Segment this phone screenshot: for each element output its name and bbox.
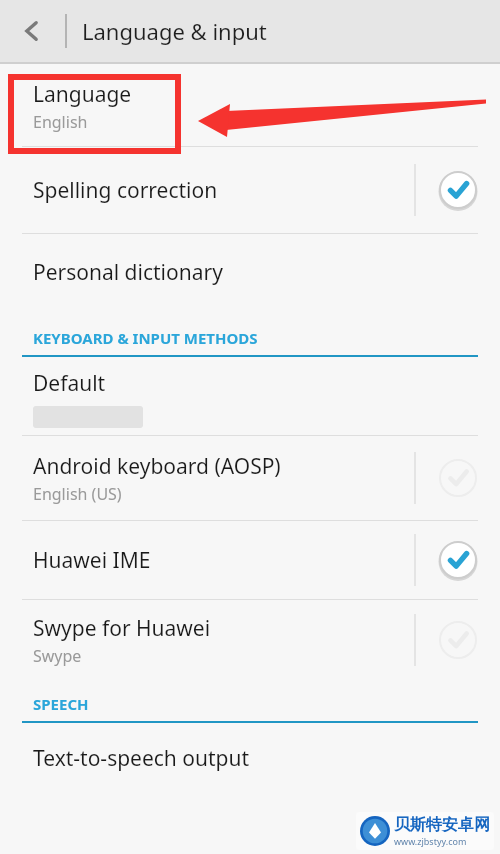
button[interactable]: Swype for Huawei — [0, 600, 500, 680]
staticText: English — [33, 111, 88, 133]
staticText: Swype — [33, 645, 82, 667]
button[interactable]: Language — [0, 64, 500, 146]
staticText: Text-to-speech output — [33, 744, 250, 773]
button[interactable]: Personal dictionary — [0, 234, 500, 312]
button[interactable]: Spelling correction — [0, 147, 500, 233]
staticText: Huawei IME — [33, 546, 151, 575]
staticText: www.zjbstyy.com — [394, 835, 467, 847]
staticText: Language & input — [82, 16, 267, 46]
staticText: Swype for Huawei — [33, 614, 211, 643]
button[interactable]: Text-to-speech output — [0, 723, 500, 793]
staticText: 贝斯特安卓网 — [394, 815, 490, 835]
button[interactable]: Huawei IME — [0, 521, 500, 599]
button[interactable]: Default — [0, 357, 500, 435]
staticText: Android keyboard (AOSP) — [33, 452, 281, 481]
button[interactable]: Android keyboard (AOSP) — [0, 436, 500, 520]
staticText: English (US) — [33, 483, 122, 505]
staticText: SPEECH — [33, 694, 89, 714]
staticText: Personal dictionary — [33, 258, 223, 287]
button[interactable]: Enabled — [416, 521, 500, 599]
staticText: KEYBOARD & INPUT METHODS — [33, 328, 258, 348]
staticText: Spelling correction — [33, 176, 218, 205]
button[interactable]: Enabled — [416, 147, 500, 233]
staticText: Default — [33, 369, 106, 398]
staticText: Language — [33, 80, 132, 109]
button[interactable]: Back — [8, 7, 56, 55]
